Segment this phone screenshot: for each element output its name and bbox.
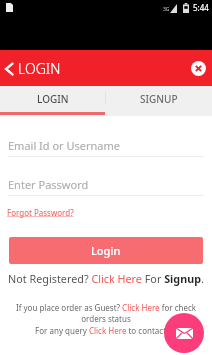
button[interactable]: Login — [9, 237, 203, 264]
staticText: Enter Password — [8, 177, 89, 192]
button[interactable]: SIGNUP — [106, 86, 212, 116]
staticText: Email Id or Username — [8, 138, 121, 153]
staticText: LOGIN — [37, 92, 69, 106]
button[interactable]: Close — [191, 61, 206, 76]
button[interactable]: Forgot Password? — [7, 207, 74, 218]
button[interactable]: Back — [4, 59, 61, 78]
staticText: LOGIN — [18, 59, 61, 78]
staticText: 5:44 — [193, 2, 209, 13]
other: Back — [4, 61, 14, 77]
staticText: If you place order as Guest? Click Here … — [6, 302, 206, 324]
button[interactable]: Contact us — [164, 313, 204, 353]
button[interactable]: LOGIN — [0, 86, 105, 116]
staticText: Not Registered? Click Here For Signup. — [0, 271, 212, 286]
staticText: 3G — [163, 6, 170, 13]
staticText: For any query Click Here to contact us — [0, 325, 212, 336]
staticText: Login — [91, 243, 121, 258]
staticText: SIGNUP — [140, 92, 178, 106]
